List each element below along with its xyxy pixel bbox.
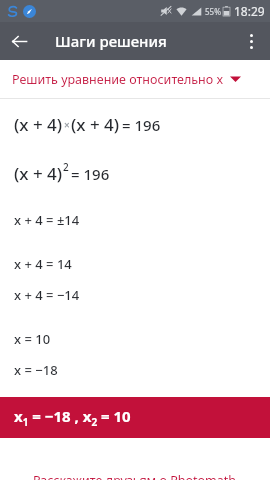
staticText: (x + 4) [14, 113, 63, 136]
staticText: = 196 [71, 164, 110, 184]
staticText: x + 4 = −14 [14, 286, 80, 304]
staticText: x = 10 [14, 330, 51, 348]
staticText: x + 4 = ±14 [14, 211, 80, 229]
staticText: x = −18 [14, 361, 58, 379]
staticText: (x + 4) [71, 113, 120, 136]
staticText: Решить уравнение относительно x [12, 71, 224, 88]
button[interactable]: x1 = −18 , x2 = 10 [0, 397, 270, 438]
staticText: Расскажите друзьям о Photomath [33, 472, 237, 480]
button[interactable]: Расскажите друзьям о Photomath [0, 472, 270, 480]
staticText: 2 [63, 160, 69, 174]
staticText: 18:29 [234, 3, 265, 19]
staticText: (x + 4) [14, 162, 63, 185]
button[interactable]: Решить уравнение относительно x [0, 60, 270, 98]
button[interactable]: Back [0, 22, 38, 60]
staticText: Шаги решения [55, 31, 167, 51]
staticText: × [64, 118, 70, 132]
button[interactable]: More options [232, 22, 270, 60]
staticText: x1 = −18 , x2 = 10 [14, 406, 131, 429]
staticText: = 196 [122, 115, 161, 135]
staticText: x + 4 = 14 [14, 255, 72, 273]
staticText: 55% [205, 6, 221, 17]
